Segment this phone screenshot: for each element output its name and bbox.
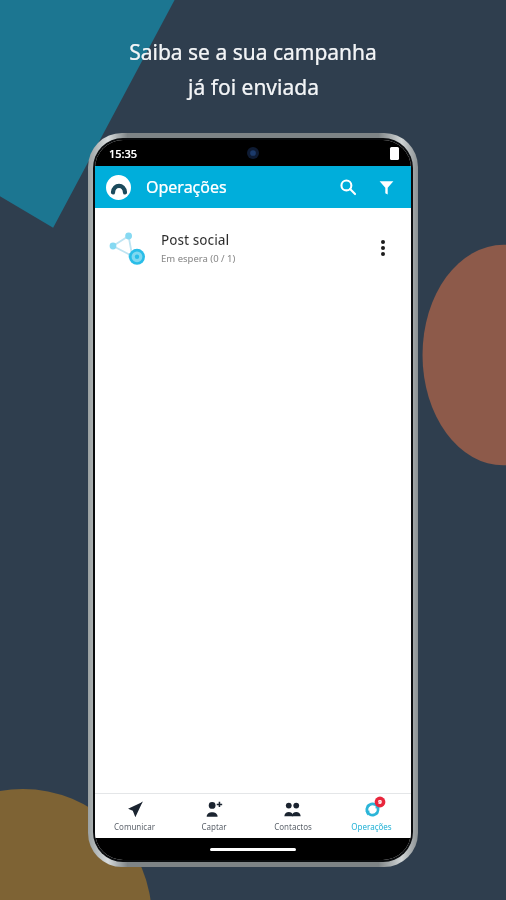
staticText: já foi enviada: [188, 73, 319, 102]
button[interactable]: 9: [332, 794, 411, 838]
button[interactable]: Comunicar: [95, 794, 174, 838]
staticText: Em espera (0 / 1): [161, 252, 236, 265]
button[interactable]: Search: [329, 168, 367, 206]
staticText: Saiba se a sua campanha: [129, 38, 377, 67]
staticText: 9: [378, 798, 382, 806]
staticText: Operações: [351, 821, 392, 832]
button[interactable]: Menu: [106, 175, 131, 200]
staticText: Operações: [146, 176, 227, 198]
button[interactable]: Post social: [95, 222, 411, 274]
staticText: 15:35: [109, 146, 138, 161]
staticText: Contactos: [274, 821, 312, 832]
button[interactable]: Filter: [367, 168, 405, 206]
button[interactable]: Contactos: [253, 794, 332, 838]
button[interactable]: Captar: [174, 794, 253, 838]
staticText: Post social: [161, 231, 230, 249]
staticText: Comunicar: [114, 821, 155, 832]
button[interactable]: More options: [365, 230, 401, 266]
staticText: Captar: [201, 821, 227, 832]
